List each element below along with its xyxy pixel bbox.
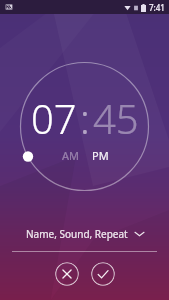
staticText: 7:41 [149,2,165,13]
button[interactable]: Name, Sound, Repeat [16,221,154,247]
staticText: AM [62,148,80,163]
staticText: Name, Sound, Repeat [26,227,128,241]
staticText: PM [92,148,109,163]
button[interactable]: AM [60,148,82,163]
button[interactable]: 45 [93,91,139,145]
button[interactable]: Confirm [91,262,115,286]
button[interactable]: Cancel [55,262,79,286]
button[interactable]: PM [90,148,111,163]
staticText: : [80,91,90,145]
button[interactable]: 07 [31,91,77,145]
